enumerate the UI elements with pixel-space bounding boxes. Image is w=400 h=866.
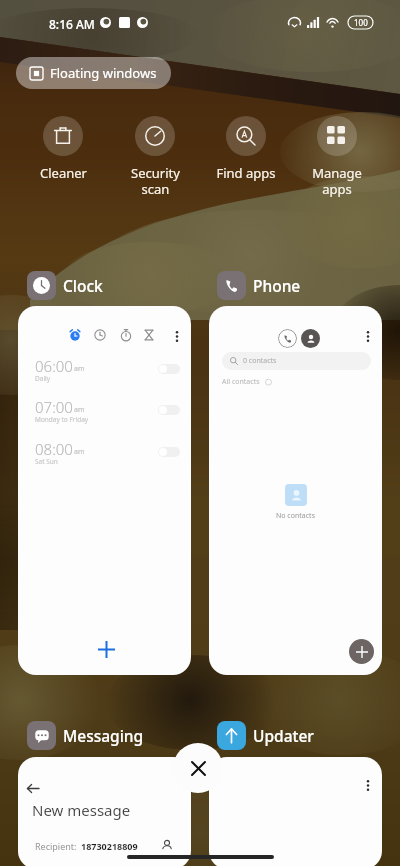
staticText: Cleaner <box>40 164 87 182</box>
staticText: am <box>74 364 85 374</box>
staticText: All contacts <box>222 377 260 387</box>
button[interactable]: Dialer <box>209 306 382 675</box>
button[interactable]: Updater <box>217 721 314 750</box>
button[interactable]: Alarm toggle <box>158 447 180 457</box>
button[interactable]: Messaging <box>27 721 144 750</box>
staticText: 18730218809 <box>81 840 138 852</box>
staticText: Updater <box>253 725 314 746</box>
button[interactable]: Security scan <box>110 116 200 197</box>
staticText: 0 contacts <box>243 356 277 366</box>
button[interactable]: 06:00 <box>18 356 191 394</box>
staticText: Floating windows <box>50 64 157 82</box>
button[interactable]: Tab <box>138 324 160 346</box>
button[interactable]: Back <box>18 757 191 866</box>
staticText: Monday to Friday <box>35 415 89 424</box>
button[interactable]: Tab <box>89 324 111 346</box>
button[interactable]: Clock <box>27 271 103 300</box>
button[interactable]: Tab <box>64 324 86 346</box>
staticText: Daily <box>35 374 51 383</box>
staticText: No contacts <box>276 511 315 521</box>
button[interactable]: Phone <box>217 271 301 300</box>
button[interactable]: Alarm toggle <box>158 364 180 374</box>
staticText: 08:00 <box>35 439 73 459</box>
staticText: Clock <box>63 275 103 296</box>
button[interactable]: More options <box>209 757 382 866</box>
staticText: 07:00 <box>35 397 73 417</box>
staticText: Security scan <box>131 164 180 197</box>
staticText: New message <box>32 800 131 820</box>
staticText: Find apps <box>216 164 276 182</box>
button[interactable]: 08:00 <box>18 439 191 477</box>
button[interactable]: Floating windows <box>16 57 171 89</box>
button[interactable]: Back <box>21 776 45 800</box>
button[interactable]: Close <box>173 743 223 793</box>
staticText: Recipient: <box>35 840 77 852</box>
button[interactable]: Add contact <box>349 639 374 664</box>
staticText: Phone <box>253 275 301 296</box>
staticText: Sat Sun <box>35 457 58 466</box>
button[interactable]: 07:00 <box>18 397 191 435</box>
button[interactable]: Find apps <box>201 116 291 182</box>
button[interactable]: 0 contacts <box>222 352 371 370</box>
button[interactable]: Cleaner <box>18 116 108 182</box>
button[interactable]: More options <box>357 774 379 796</box>
button[interactable]: Tab <box>115 324 137 346</box>
staticText: 06:00 <box>35 356 73 376</box>
button[interactable]: Alarm toggle <box>158 405 180 415</box>
staticText: Messaging <box>63 725 144 746</box>
button[interactable]: Tab <box>18 306 191 675</box>
button[interactable]: Dialer <box>278 329 297 348</box>
button[interactable]: Manage apps <box>292 116 382 197</box>
button[interactable]: Add alarm <box>88 631 124 667</box>
staticText: Manage apps <box>312 164 362 197</box>
button[interactable]: Contacts <box>301 329 320 348</box>
button[interactable]: Pick contact <box>156 835 178 857</box>
staticText: am <box>74 405 85 415</box>
staticText: 8:16 AM <box>49 16 95 32</box>
button[interactable]: More options <box>357 325 379 347</box>
staticText: am <box>74 447 85 457</box>
staticText: 100 <box>354 17 368 28</box>
button[interactable]: More options <box>166 325 188 347</box>
